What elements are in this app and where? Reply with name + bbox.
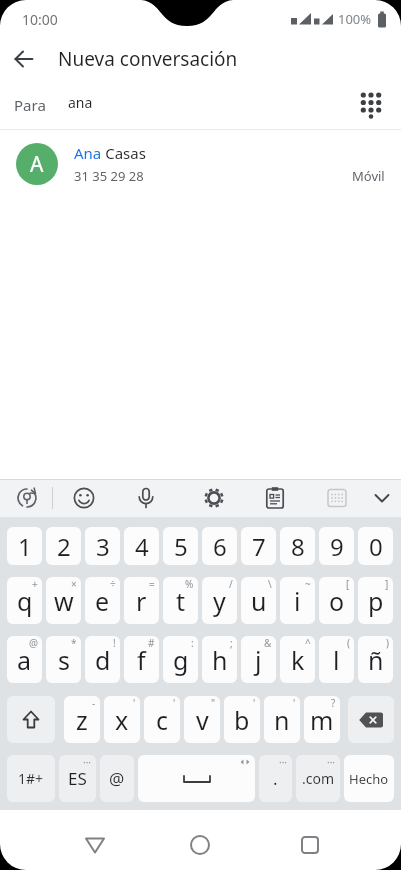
staticText: ; [230, 636, 233, 650]
button[interactable]: f [124, 636, 159, 683]
button[interactable]: 1 [7, 527, 42, 565]
button[interactable]: Hecho [344, 755, 394, 802]
button[interactable] [65, 479, 103, 517]
button[interactable]: d [85, 636, 120, 683]
button[interactable]: c [144, 696, 180, 743]
staticText: n [274, 703, 290, 737]
staticText: ] [385, 577, 389, 591]
button[interactable]: e [85, 577, 120, 624]
button[interactable]: a [7, 636, 42, 683]
button[interactable]: . [259, 755, 292, 802]
staticText: b [234, 703, 250, 737]
staticText: s [58, 643, 70, 677]
staticText: + [32, 577, 38, 591]
staticText: ··· [279, 755, 288, 769]
staticText: a [17, 643, 32, 677]
staticText: h [212, 643, 228, 677]
button[interactable] [195, 479, 233, 517]
button[interactable]: n [264, 696, 300, 743]
staticText: t [176, 584, 186, 618]
button[interactable]: w [46, 577, 81, 624]
button[interactable] [176, 821, 224, 869]
button[interactable]: 2 [46, 527, 81, 565]
button[interactable]: 1#+ [7, 755, 55, 802]
button[interactable]: z [64, 696, 100, 743]
button[interactable] [0, 38, 48, 80]
button[interactable]: v [184, 696, 220, 743]
staticText: ' [133, 696, 136, 710]
staticText: Nueva conversación [58, 46, 238, 72]
staticText: f [137, 643, 146, 677]
button[interactable]: y [202, 577, 237, 624]
button[interactable] [127, 479, 165, 517]
button[interactable]: ñ [358, 636, 393, 683]
button[interactable]: o [319, 577, 354, 624]
button[interactable]: q [7, 577, 42, 624]
button[interactable]: 5 [163, 527, 198, 565]
button[interactable] [138, 755, 255, 802]
staticText: Ana Casas [74, 143, 146, 163]
staticText: & [264, 636, 272, 650]
button[interactable] [256, 479, 294, 517]
button[interactable]: 9 [319, 527, 354, 565]
staticText: z [76, 703, 88, 737]
button[interactable]: g [163, 636, 198, 683]
button[interactable]: 8 [280, 527, 315, 565]
button[interactable]: 0 [358, 527, 393, 565]
button[interactable]: s [46, 636, 81, 683]
staticText: : [191, 636, 194, 650]
button[interactable]: b [224, 696, 260, 743]
button[interactable] [71, 821, 119, 869]
staticText: 2 [57, 530, 71, 563]
staticText: ñ [368, 643, 384, 677]
staticText: ! [113, 636, 116, 650]
button[interactable]: i [280, 577, 315, 624]
button[interactable]: .com [296, 755, 340, 802]
staticText: 10:00 [22, 10, 58, 29]
button[interactable] [7, 696, 55, 743]
staticText: i [294, 584, 301, 618]
staticText: \ [268, 577, 272, 591]
staticText: = [149, 577, 155, 591]
button[interactable] [349, 83, 393, 127]
button[interactable]: t [163, 577, 198, 624]
staticText: % [185, 577, 194, 591]
button[interactable] [8, 479, 46, 517]
staticText: l [333, 643, 340, 677]
button[interactable]: 4 [124, 527, 159, 565]
button[interactable]: p [358, 577, 393, 624]
button[interactable]: 6 [202, 527, 237, 565]
button[interactable]: 7 [241, 527, 276, 565]
button[interactable]: l [319, 636, 354, 683]
button[interactable] [286, 821, 334, 869]
staticText: [ [346, 577, 350, 591]
button[interactable]: h [202, 636, 237, 683]
button[interactable]: ES [59, 755, 96, 802]
staticText: d [95, 643, 111, 677]
staticText: v [196, 703, 209, 737]
staticText: ··· [83, 755, 92, 769]
staticText: ~ [305, 577, 311, 591]
staticText: .com [302, 769, 335, 788]
button[interactable]: @ [100, 755, 134, 802]
staticText: w [54, 584, 74, 618]
staticText: k [291, 643, 305, 677]
staticText: 3 [96, 530, 110, 563]
button[interactable]: r [124, 577, 159, 624]
staticText: ··· [327, 755, 336, 769]
button[interactable] [318, 479, 356, 517]
button[interactable]: k [280, 636, 315, 683]
staticText: 6 [213, 530, 227, 563]
staticText: ana [68, 93, 93, 112]
button[interactable]: m [304, 696, 340, 743]
staticText: ) [386, 636, 389, 650]
button[interactable] [348, 696, 394, 743]
staticText: c [156, 703, 169, 737]
staticText: 5 [174, 530, 188, 563]
button[interactable]: u [241, 577, 276, 624]
button[interactable]: A [0, 130, 401, 198]
button[interactable] [363, 479, 401, 517]
button[interactable]: 3 [85, 527, 120, 565]
button[interactable]: j [241, 636, 276, 683]
button[interactable]: x [104, 696, 140, 743]
